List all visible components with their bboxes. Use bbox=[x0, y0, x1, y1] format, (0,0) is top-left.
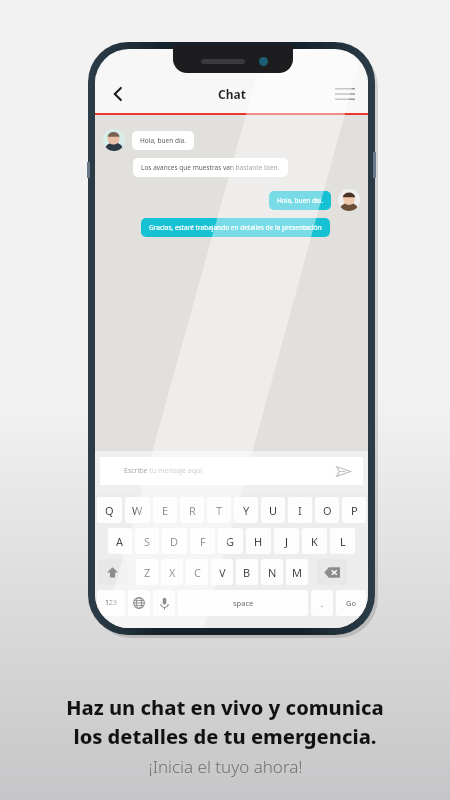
staticText: Q bbox=[105, 503, 114, 518]
button[interactable]: Gracias, estaré trabajando en detalles d… bbox=[141, 218, 330, 237]
button[interactable]: E bbox=[153, 497, 177, 523]
button[interactable]: C bbox=[186, 559, 208, 585]
button[interactable]: H bbox=[246, 528, 271, 554]
staticText: Escribe tu mensaje aquí bbox=[124, 466, 203, 476]
button[interactable]: key bbox=[317, 559, 347, 585]
staticText: T bbox=[216, 503, 223, 518]
button[interactable]: I bbox=[288, 497, 312, 523]
staticText: Go bbox=[346, 598, 356, 608]
button[interactable]: X bbox=[161, 559, 183, 585]
button[interactable]: V bbox=[211, 559, 233, 585]
button[interactable]: key bbox=[153, 590, 175, 616]
staticText: I bbox=[298, 503, 302, 518]
button[interactable]: M bbox=[286, 559, 308, 585]
staticText: K bbox=[311, 534, 318, 549]
button[interactable]: key bbox=[178, 590, 308, 616]
staticText: X bbox=[169, 565, 176, 580]
button[interactable]: key bbox=[336, 590, 366, 616]
button[interactable]: G bbox=[218, 528, 243, 554]
staticText: space bbox=[233, 598, 254, 608]
staticText: Chat bbox=[218, 86, 246, 102]
staticText: Hola, buen día. bbox=[140, 136, 186, 145]
button[interactable]: F bbox=[190, 528, 215, 554]
staticText: W bbox=[132, 503, 143, 518]
staticText: Los avances que muestras van bastante bi… bbox=[141, 163, 280, 172]
staticText: los detalles de tu emergencia. bbox=[73, 723, 377, 750]
button[interactable]: key bbox=[97, 559, 127, 585]
staticText: B bbox=[243, 565, 251, 580]
staticText: Gracias, estaré trabajando en detalles d… bbox=[149, 223, 322, 232]
button[interactable]: Send bbox=[333, 461, 353, 481]
staticText: D bbox=[170, 534, 179, 549]
button[interactable]: R bbox=[180, 497, 204, 523]
button[interactable]: O bbox=[315, 497, 339, 523]
button[interactable]: Escribe tu mensaje aquí bbox=[100, 457, 363, 485]
staticText: V bbox=[219, 565, 226, 580]
staticText: O bbox=[323, 503, 332, 518]
button[interactable]: U bbox=[261, 497, 285, 523]
staticText: L bbox=[340, 534, 346, 549]
staticText: A bbox=[116, 534, 124, 549]
button[interactable]: Back bbox=[103, 79, 133, 109]
staticText: Haz un chat en vivo y comunica bbox=[66, 694, 384, 721]
staticText: . bbox=[321, 598, 324, 609]
button[interactable]: key bbox=[128, 590, 150, 616]
staticText: S bbox=[144, 534, 151, 549]
staticText: E bbox=[162, 503, 169, 518]
staticText: 123 bbox=[105, 598, 118, 608]
button[interactable]: W bbox=[125, 497, 150, 523]
button[interactable]: P bbox=[342, 497, 366, 523]
button[interactable]: K bbox=[302, 528, 327, 554]
button[interactable]: Menu bbox=[330, 79, 360, 109]
button[interactable]: J bbox=[274, 528, 299, 554]
button[interactable]: S bbox=[135, 528, 159, 554]
button[interactable]: key bbox=[311, 590, 333, 616]
staticText: F bbox=[200, 534, 206, 549]
staticText: J bbox=[285, 534, 289, 549]
staticText: C bbox=[194, 565, 201, 580]
staticText: ¡Inicia el tuyo ahora! bbox=[148, 755, 303, 778]
button[interactable]: B bbox=[236, 559, 258, 585]
button[interactable]: A bbox=[108, 528, 132, 554]
button[interactable]: key bbox=[97, 590, 125, 616]
button[interactable]: D bbox=[162, 528, 187, 554]
button[interactable]: Q bbox=[97, 497, 122, 523]
staticText: G bbox=[226, 534, 235, 549]
staticText: H bbox=[254, 534, 263, 549]
staticText: U bbox=[269, 503, 278, 518]
button[interactable]: Z bbox=[136, 559, 158, 585]
staticText: Hola, buen día. bbox=[277, 196, 323, 205]
staticText: R bbox=[189, 503, 196, 518]
button[interactable]: L bbox=[330, 528, 355, 554]
button[interactable]: Hola, buen día. bbox=[132, 131, 194, 150]
staticText: M bbox=[292, 565, 302, 580]
button[interactable]: N bbox=[261, 559, 283, 585]
button[interactable]: Hola, buen día. bbox=[269, 191, 331, 210]
staticText: N bbox=[268, 565, 277, 580]
staticText: Y bbox=[243, 503, 250, 518]
button[interactable]: Los avances que muestras van bastante bi… bbox=[133, 158, 288, 177]
button[interactable]: Y bbox=[234, 497, 258, 523]
button[interactable]: T bbox=[207, 497, 231, 523]
staticText: Z bbox=[144, 565, 151, 580]
staticText: P bbox=[351, 503, 358, 518]
